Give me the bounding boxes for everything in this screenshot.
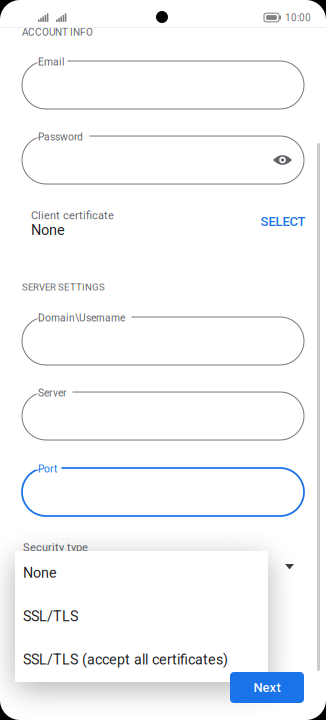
- button[interactable]: Client certificate: [22, 209, 306, 247]
- staticText: ACCOUNT INFO: [22, 26, 93, 38]
- button[interactable]: Email: [22, 61, 304, 109]
- staticText: Security type: [23, 541, 88, 554]
- staticText: None: [23, 564, 57, 581]
- staticText: Domain\Username: [38, 312, 125, 324]
- staticText: Email: [38, 56, 65, 68]
- button[interactable]: Domain\Username: [22, 317, 304, 365]
- staticText: 10:00: [285, 12, 311, 24]
- button[interactable]: SSL/TLS (accept all certificates): [15, 638, 268, 681]
- staticText: None: [31, 221, 65, 238]
- button[interactable]: None: [15, 551, 268, 594]
- staticText: Port: [38, 463, 57, 475]
- staticText: Next: [253, 680, 280, 695]
- button[interactable]: Server: [22, 392, 304, 440]
- staticText: SELECT: [260, 214, 305, 229]
- button[interactable]: Port: [22, 468, 304, 516]
- button[interactable]: Password: [22, 136, 304, 184]
- staticText: SSL/TLS: [23, 608, 78, 625]
- staticText: SERVER SETTINGS: [22, 281, 105, 293]
- staticText: Server: [38, 387, 66, 399]
- staticText: Client certificate: [31, 209, 114, 222]
- button[interactable]: SSL/TLS: [15, 594, 268, 638]
- button[interactable]: Next: [230, 672, 304, 703]
- staticText: SSL/TLS (accept all certificates): [23, 651, 228, 668]
- staticText: Password: [38, 131, 83, 143]
